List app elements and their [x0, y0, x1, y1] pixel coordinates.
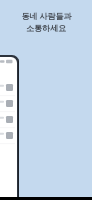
- button[interactable]: 앱 미리보기: [0, 55, 19, 200]
- staticText: 소통하세요: [26, 23, 66, 33]
- staticText: 동네 사람들과: [21, 10, 72, 21]
